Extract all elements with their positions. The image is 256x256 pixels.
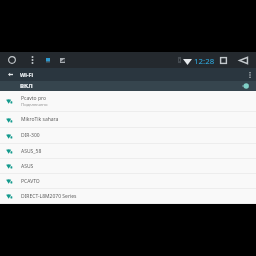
button[interactable]: Navigate up	[3, 68, 17, 81]
button[interactable]: MikroTik sahara	[0, 112, 256, 128]
staticText: 12:28	[194, 56, 215, 67]
staticText: Подключено	[21, 101, 48, 107]
button[interactable]: ВКЛ	[0, 81, 256, 91]
staticText: ВКЛ	[20, 82, 33, 90]
button[interactable]: Screenshot	[60, 58, 65, 63]
button[interactable]: PCAVTO	[0, 174, 256, 189]
staticText: ASUS_58	[21, 148, 42, 155]
staticText: DIRECT-L8M2070 Series	[21, 193, 77, 200]
button[interactable]: Recent apps	[220, 57, 227, 64]
staticText: MikroTik sahara	[21, 116, 59, 123]
button[interactable]: Menu	[31, 56, 34, 64]
button[interactable]: DIR-300	[0, 128, 256, 144]
staticText: DIR-300	[21, 132, 40, 139]
button[interactable]: Open app	[46, 58, 50, 63]
button[interactable]: Pcavto pro	[0, 91, 256, 112]
button[interactable]: ASUS	[0, 159, 256, 174]
staticText: ASUS	[21, 163, 34, 170]
staticText: Wi-Fi	[20, 71, 34, 78]
button[interactable]: Home	[8, 56, 16, 64]
staticText: Pcavto pro	[21, 95, 46, 102]
button[interactable]: Back	[239, 57, 248, 64]
button[interactable]: ASUS_58	[0, 144, 256, 159]
button[interactable]: DIRECT-L8M2070 Series	[0, 189, 256, 204]
staticText: PCAVTO	[21, 178, 40, 185]
button[interactable]: More options	[244, 68, 256, 81]
